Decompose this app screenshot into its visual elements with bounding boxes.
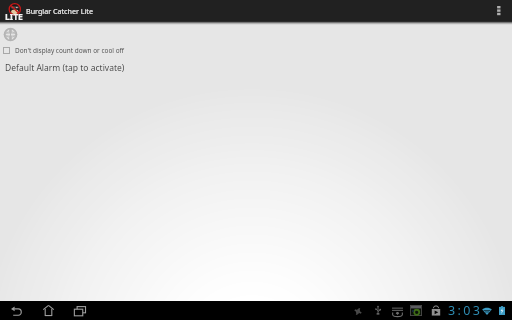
staticText: Burglar Catcher Lite (26, 6, 93, 16)
staticText: LITE (5, 11, 23, 23)
button[interactable]: Don't display count down or cool off (0, 44, 512, 56)
button[interactable]: Default Alarm (tap to activate) (0, 60, 512, 76)
staticText: 3:03 (448, 302, 483, 319)
button[interactable]: Recent apps (64, 301, 96, 320)
button[interactable]: Home (32, 301, 64, 320)
button[interactable]: More options (492, 0, 512, 21)
button[interactable]: Back (0, 301, 32, 320)
staticText: Default Alarm (tap to activate) (5, 62, 125, 74)
staticText: Don't display count down or cool off (15, 46, 124, 55)
